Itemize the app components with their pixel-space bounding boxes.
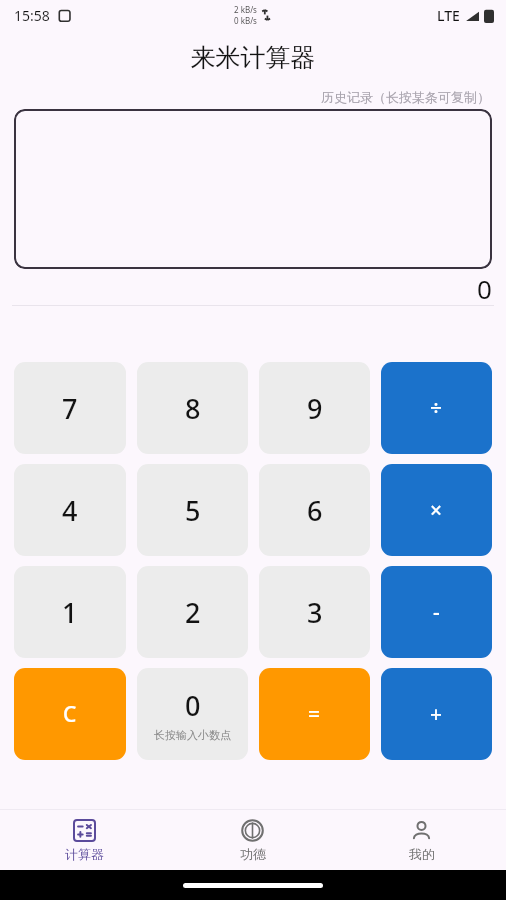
button[interactable] [14, 109, 492, 269]
staticText: 3 [307, 594, 323, 631]
staticText: ÷ [430, 394, 443, 423]
staticText: 0 kB/s [234, 15, 257, 26]
staticText: 6 [307, 492, 323, 529]
button[interactable]: 3 [259, 566, 370, 658]
button[interactable]: - [381, 566, 492, 658]
button[interactable]: 计算器 [0, 810, 168, 870]
staticText: 8 [185, 390, 201, 427]
staticText: 功德 [240, 846, 266, 862]
staticText: = [308, 700, 321, 729]
staticText: 4 [62, 492, 78, 529]
staticText: 计算器 [65, 846, 104, 862]
staticText: 15:58 [14, 6, 50, 25]
staticText: - [433, 598, 440, 627]
staticText: 2 kB/s [234, 4, 257, 15]
button[interactable]: 0 [137, 668, 248, 760]
button[interactable]: = [259, 668, 370, 760]
button[interactable]: ÷ [381, 362, 492, 454]
staticText: 0 [477, 271, 492, 305]
staticText: C [63, 700, 77, 729]
staticText: LTE [437, 6, 460, 25]
staticText: 7 [62, 390, 78, 427]
staticText: 0 [185, 687, 201, 724]
other: 功德 [241, 819, 264, 842]
staticText: 1 [62, 594, 78, 631]
button[interactable]: 7 [14, 362, 126, 454]
staticText: 5 [185, 492, 201, 529]
staticText: + [430, 700, 443, 729]
staticText: × [430, 496, 443, 525]
button[interactable]: × [381, 464, 492, 556]
button[interactable]: + [381, 668, 492, 760]
button[interactable]: C [14, 668, 126, 760]
button[interactable]: 4 [14, 464, 126, 556]
button[interactable]: 1 [14, 566, 126, 658]
staticText: 我的 [409, 846, 435, 862]
other: 我的 [410, 819, 433, 842]
staticText: 9 [307, 390, 323, 427]
button[interactable]: 我的 [337, 810, 506, 870]
button[interactable]: 8 [137, 362, 248, 454]
button[interactable]: 5 [137, 464, 248, 556]
button[interactable]: 2 [137, 566, 248, 658]
staticText: 历史记录（长按某条可复制） [0, 89, 490, 105]
other: 计算器 [73, 819, 96, 842]
staticText: 长按输入小数点 [154, 728, 231, 742]
staticText: 来米计算器 [0, 42, 506, 73]
button[interactable]: 9 [259, 362, 370, 454]
staticText: 2 [185, 594, 201, 631]
button[interactable]: 6 [259, 464, 370, 556]
button[interactable]: 功德 [168, 810, 337, 870]
